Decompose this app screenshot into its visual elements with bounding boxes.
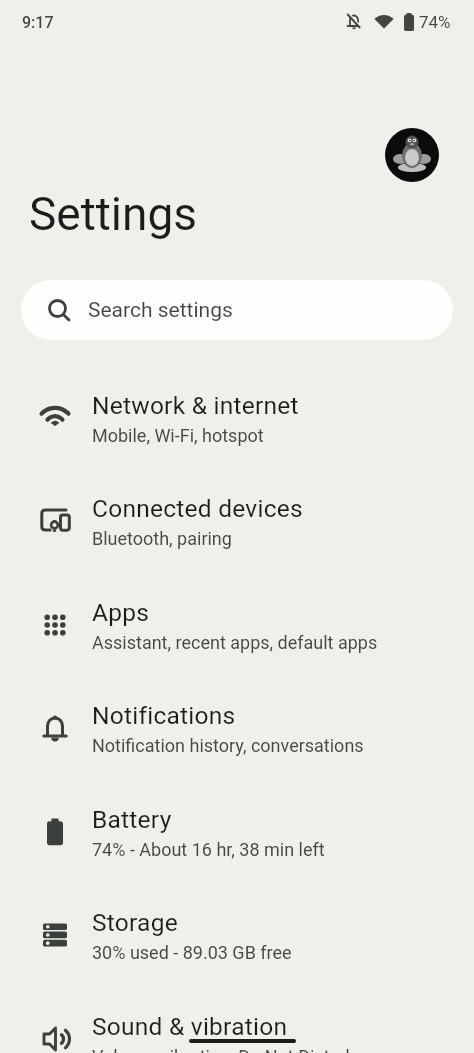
staticText: Storage: [92, 908, 178, 937]
button[interactable]: Notifications: [0, 676, 474, 780]
staticText: Bluetooth, pairing: [92, 528, 232, 549]
button[interactable]: Network & internet: [0, 366, 474, 470]
staticText: 74% - About 16 hr, 38 min left: [92, 839, 325, 860]
staticText: Settings: [29, 187, 197, 241]
staticText: Sound & vibration: [92, 1012, 288, 1041]
staticText: Notification history, conversations: [92, 735, 364, 756]
staticText: 9:17: [22, 13, 54, 32]
staticText: Network & internet: [92, 391, 299, 420]
button[interactable]: Search settings: [21, 280, 453, 340]
staticText: 74%: [419, 12, 451, 32]
staticText: Volume, vibration, Do Not Disturb: [92, 1046, 356, 1053]
staticText: Battery: [92, 805, 172, 834]
button[interactable]: [385, 128, 439, 182]
staticText: Mobile, Wi-Fi, hotspot: [92, 425, 264, 446]
button[interactable]: Connected devices: [0, 469, 474, 573]
staticText: Notifications: [92, 701, 236, 730]
staticText: Search settings: [88, 298, 233, 323]
staticText: Assistant, recent apps, default apps: [92, 632, 378, 653]
staticText: Connected devices: [92, 494, 303, 523]
staticText: Apps: [92, 598, 150, 627]
staticText: 30% used - 89.03 GB free: [92, 942, 292, 963]
button[interactable]: Battery: [0, 780, 474, 884]
button[interactable]: Storage: [0, 883, 474, 987]
button[interactable]: Sound & vibration: [0, 987, 474, 1053]
button[interactable]: Apps: [0, 573, 474, 677]
